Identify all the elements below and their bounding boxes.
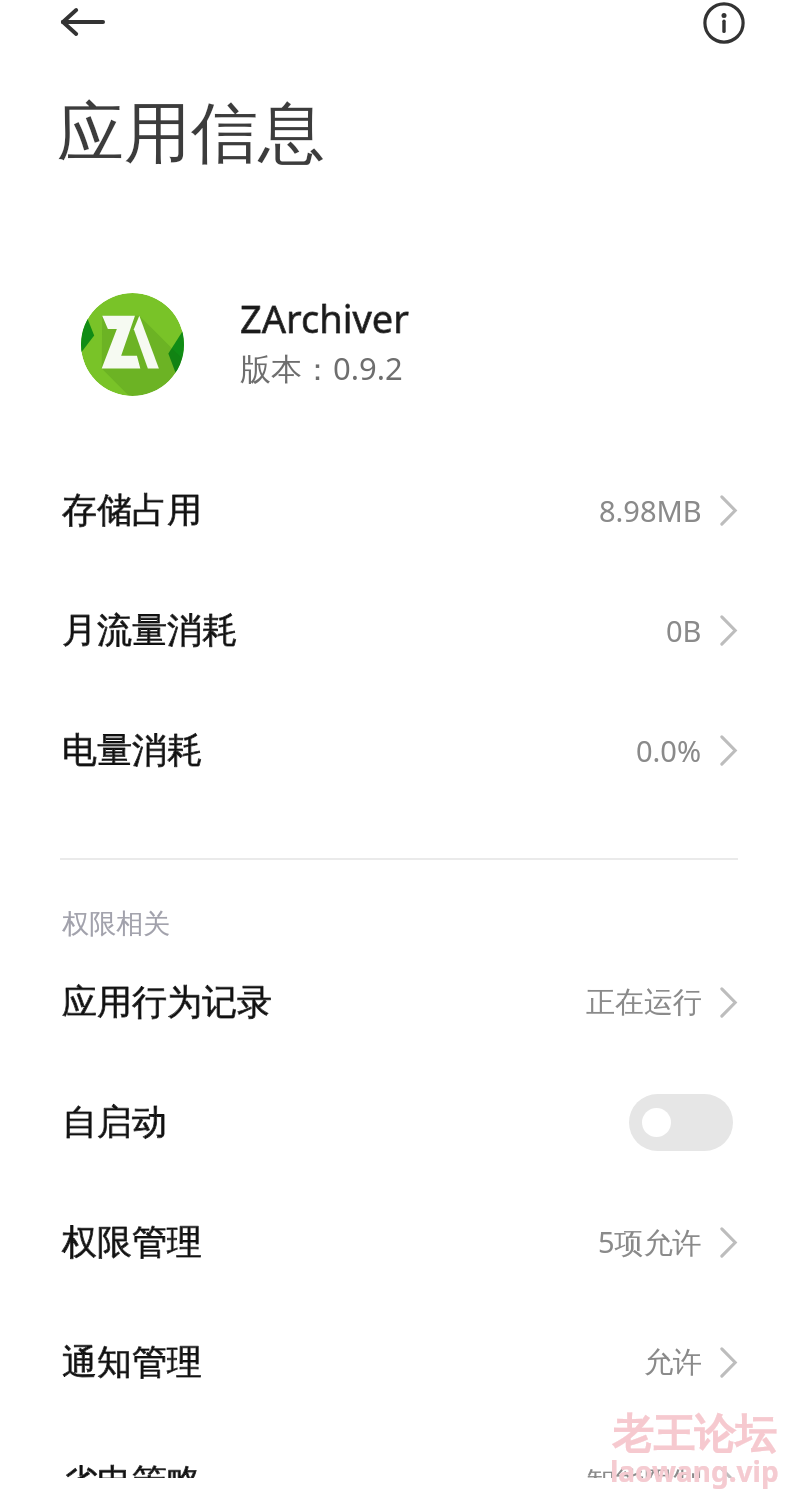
staticText: 应用行为记录	[62, 980, 272, 1024]
staticText: 自启动	[62, 1100, 167, 1144]
staticText: 允许	[644, 1344, 702, 1381]
staticText: 电量消耗	[62, 728, 202, 772]
staticText: 权限相关	[62, 907, 170, 941]
staticText: 正在运行	[586, 984, 702, 1021]
staticText: 通知管理	[62, 1340, 202, 1384]
button[interactable]: 月流量消耗	[0, 570, 798, 690]
button[interactable]: 应用行为记录	[0, 942, 798, 1062]
staticText: 0.0%	[636, 731, 702, 770]
button[interactable]: 自启动	[0, 1062, 798, 1182]
staticText: 电量消耗	[62, 728, 202, 772]
staticText: 智能限制	[586, 1464, 702, 1500]
staticText: laowang.vip	[610, 1452, 779, 1490]
staticText: 老王论坛	[612, 1409, 776, 1461]
staticText: 省电策略	[62, 1460, 202, 1500]
button[interactable]: 存储占用	[0, 450, 798, 570]
staticText: ZArchiver	[240, 292, 409, 344]
staticText: 5项允许	[598, 1222, 702, 1262]
staticText: 自启动	[62, 1100, 167, 1144]
staticText: 月流量消耗	[62, 608, 237, 652]
staticText: 应用信息	[57, 91, 325, 175]
button[interactable]: 权限管理	[0, 1182, 798, 1302]
button[interactable]: Auto start toggle	[629, 1094, 733, 1151]
button[interactable]: 电量消耗	[0, 690, 798, 810]
button[interactable]: 省电策略	[0, 1422, 798, 1500]
staticText: 8.98MB	[599, 491, 702, 530]
staticText: 版本：0.9.2	[240, 347, 403, 389]
staticText: ZArchiver	[240, 292, 409, 344]
staticText: 月流量消耗	[62, 608, 237, 652]
staticText: 通知管理	[62, 1340, 202, 1384]
staticText: 权限管理	[62, 1220, 202, 1264]
button[interactable]: Back	[40, 0, 126, 44]
button[interactable]: 通知管理	[0, 1302, 798, 1422]
button[interactable]: Info	[694, 0, 753, 52]
staticText: 省电策略	[62, 1460, 202, 1500]
staticText: 存储占用	[62, 488, 202, 532]
staticText: 应用行为记录	[62, 980, 272, 1024]
staticText: 存储占用	[62, 488, 202, 532]
staticText: 0B	[666, 611, 702, 650]
staticText: 权限管理	[62, 1220, 202, 1264]
